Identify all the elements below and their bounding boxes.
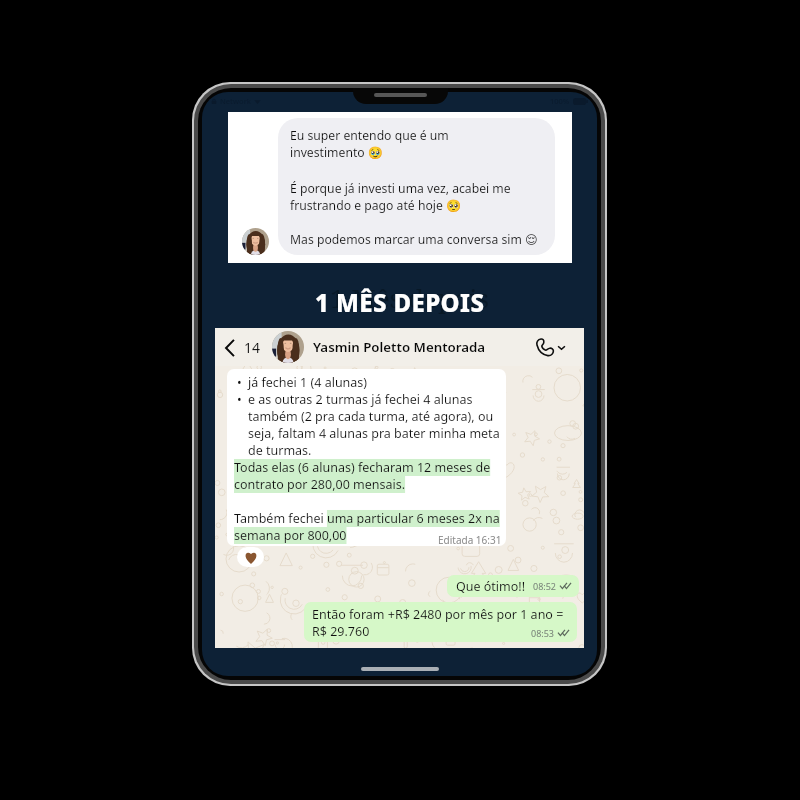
staticText: 14: [244, 338, 261, 357]
staticText: Mas podemos marcar uma conversa sim 😌: [290, 231, 538, 248]
staticText: •: [237, 391, 242, 408]
button[interactable]: Então foram +R$ 2480 por mês por 1 ano =…: [304, 602, 577, 642]
button[interactable]: Editada 16:31: [227, 369, 506, 546]
staticText: Editada 16:31: [438, 533, 502, 546]
staticText: 1 Mês depois: [330, 280, 489, 315]
button[interactable]: Que ótimo!!: [447, 575, 579, 597]
button[interactable]: More options: [557, 343, 566, 352]
staticText: 08:52: [533, 580, 557, 592]
staticText: Então foram +R$ 2480 por mês por 1 ano =…: [312, 606, 564, 640]
staticText: •: [237, 374, 242, 391]
staticText: já fechei 1 (4 alunas): [248, 374, 368, 391]
staticText: contrato por 280,00 mensais.: [234, 476, 406, 493]
staticText: É porque já investi uma vez, acabei me: [290, 180, 511, 197]
staticText: Todas elas (6 alunas) fecharam 12 meses …: [234, 459, 491, 476]
staticText: investimento 🥹: [290, 144, 384, 161]
other: Back: [221, 339, 239, 357]
staticText: 1 MÊS DEPOIS: [315, 286, 485, 319]
button[interactable]: Heart reaction: [237, 547, 264, 567]
staticText: 08:53: [531, 627, 555, 639]
staticText: Eu super entendo que é um: [290, 127, 449, 144]
staticText: semana por 800,00: [234, 527, 347, 544]
staticText: Que ótimo!!: [456, 578, 526, 595]
button[interactable]: Back: [218, 335, 264, 360]
staticText: e as outras 2 turmas já fechei 4 alunas …: [248, 391, 500, 459]
staticText: Também fechei uma particular 6 meses 2x …: [234, 510, 500, 527]
button[interactable]: Voice call: [535, 337, 555, 357]
button[interactable]: Eu super entendo que é um: [278, 118, 555, 255]
staticText: frustrando e pago até hoje 🥺: [290, 197, 462, 214]
staticText: Yasmin Poletto Mentorada: [313, 338, 486, 356]
